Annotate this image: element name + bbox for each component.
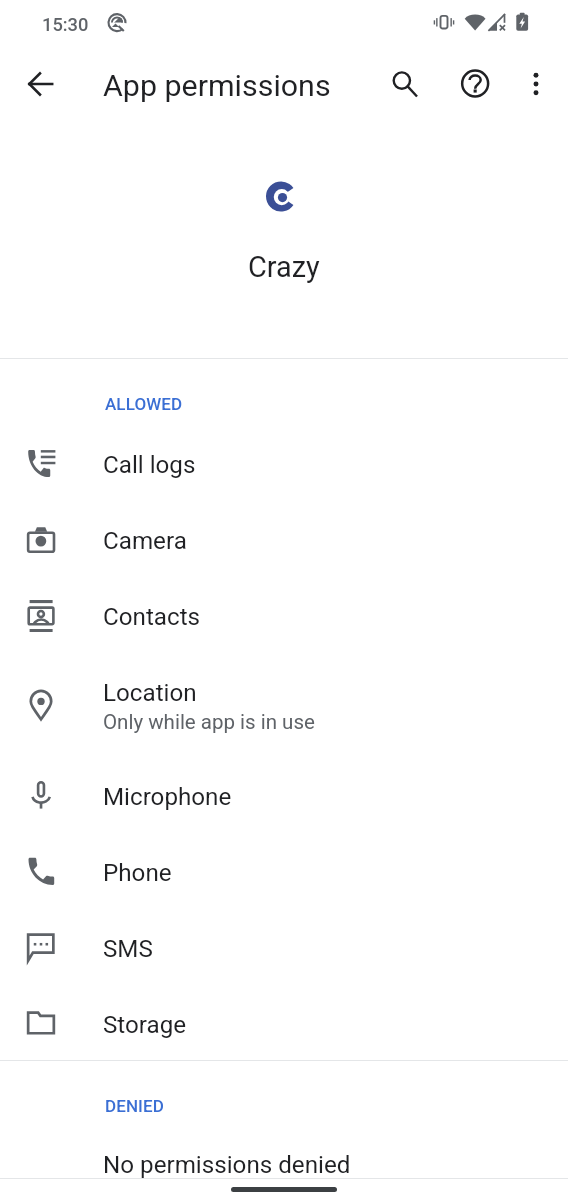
staticText: Crazy	[248, 250, 320, 284]
button[interactable]: No permissions denied	[103, 1151, 568, 1191]
button[interactable]: Contacts	[0, 576, 568, 652]
staticText: Phone	[103, 859, 172, 887]
staticText: Location	[103, 679, 197, 707]
staticText: App permissions	[103, 68, 331, 104]
button[interactable]: Search	[378, 60, 426, 108]
staticText: Camera	[103, 527, 187, 555]
button[interactable]: Microphone	[0, 756, 568, 832]
staticText: Only while app is in use	[103, 710, 315, 734]
staticText: 15:30	[42, 14, 89, 35]
button[interactable]: Camera	[0, 500, 568, 576]
staticText: Microphone	[103, 783, 232, 811]
button[interactable]: Location	[0, 652, 568, 756]
button[interactable]: Storage	[0, 984, 568, 1060]
staticText: No permissions denied	[103, 1151, 351, 1179]
staticText: Storage	[103, 1011, 187, 1039]
staticText: DENIED	[105, 1096, 164, 1116]
button[interactable]: SMS	[0, 908, 568, 984]
button[interactable]: Navigate up	[18, 60, 66, 108]
button[interactable]: Help	[451, 60, 499, 108]
staticText: SMS	[103, 935, 153, 963]
staticText: Call logs	[103, 451, 196, 479]
button[interactable]: More options	[512, 60, 560, 108]
staticText: Contacts	[103, 603, 201, 631]
button[interactable]: Phone	[0, 832, 568, 908]
button[interactable]: Call logs	[0, 424, 568, 500]
staticText: ALLOWED	[105, 394, 183, 414]
